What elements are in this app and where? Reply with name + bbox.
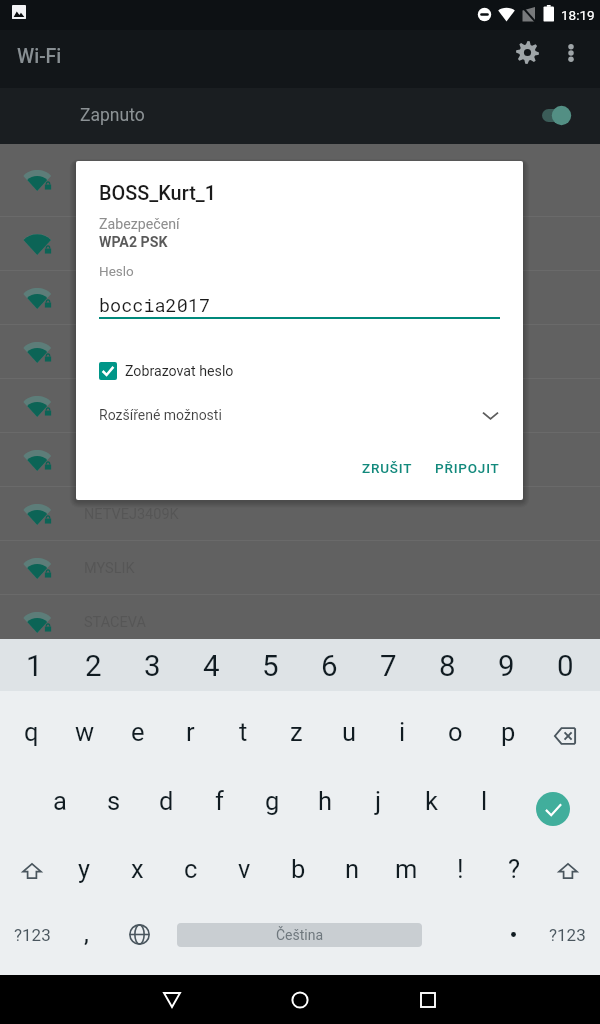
button[interactable]: Shift [5, 833, 58, 904]
staticText: ?123 [549, 925, 586, 945]
button[interactable]: p [482, 691, 535, 762]
button[interactable]: Zobrazovat heslo [99, 358, 234, 384]
button[interactable]: y [58, 833, 111, 904]
button[interactable]: Backspace [535, 691, 595, 762]
button[interactable]: Recents [404, 976, 452, 1024]
button[interactable]: Back [148, 976, 196, 1024]
button[interactable]: ?123 [540, 904, 595, 975]
button[interactable]: h [299, 762, 352, 833]
button[interactable]: 6 [300, 639, 359, 691]
button[interactable]: 8 [418, 639, 477, 691]
staticText: Zapnuto [80, 105, 145, 126]
button[interactable]: 0 [536, 639, 595, 691]
staticText: ZRUŠIT [362, 460, 413, 476]
button[interactable]: ?123 [5, 904, 60, 975]
button[interactable]: 4 [182, 639, 241, 691]
button[interactable]: BOSS_Kurt_1 [0, 217, 600, 271]
button[interactable]: o [429, 691, 482, 762]
button[interactable]: z [270, 691, 323, 762]
button[interactable]: j [352, 762, 405, 833]
button[interactable]: a [33, 762, 87, 833]
staticText: 18:19 [561, 7, 595, 23]
button[interactable]: 9 [477, 639, 536, 691]
button[interactable]: O2-Internet-44 [0, 433, 600, 487]
staticText: i [399, 717, 406, 747]
button[interactable]: 2 [64, 639, 123, 691]
button[interactable]: Done [511, 762, 595, 833]
button[interactable]: Vodafone-AE12 [0, 271, 600, 325]
staticText: 8 [439, 649, 456, 684]
button[interactable]: ZRUŠIT [351, 452, 424, 484]
button[interactable]: ! [433, 833, 487, 904]
button[interactable]: , [60, 904, 113, 975]
button[interactable]: d [140, 762, 193, 833]
button[interactable]: More options [549, 30, 594, 75]
button[interactable]: 7 [359, 639, 418, 691]
button[interactable]: NETVEJ3409K [0, 487, 600, 541]
staticText: w [75, 717, 95, 747]
button[interactable]: i [376, 691, 429, 762]
button[interactable]: 5 [241, 639, 300, 691]
staticText: ASUS_X00TD [84, 172, 171, 189]
button[interactable]: c [164, 833, 217, 904]
button[interactable]: UPC7741290 [0, 325, 600, 379]
staticText: Heslo [99, 263, 134, 279]
staticText: d [159, 786, 174, 816]
button[interactable]: Change language [113, 904, 166, 975]
button[interactable]: MYSLIK [0, 541, 600, 595]
button[interactable]: m [379, 833, 433, 904]
button[interactable]: f [193, 762, 246, 833]
staticText: BOSS_Kurt_1 [99, 182, 217, 205]
button[interactable]: q [5, 691, 58, 762]
button[interactable]: TP-LINK_24G [0, 379, 600, 433]
button[interactable]: Shift [541, 833, 595, 904]
button[interactable]: g [246, 762, 299, 833]
staticText: boccia2017 [99, 293, 211, 317]
staticText: Zabezpečení [99, 216, 180, 233]
button[interactable]: t [217, 691, 270, 762]
staticText: z [290, 717, 303, 747]
button[interactable]: k [405, 762, 458, 833]
staticText: Rozšířené možnosti [99, 407, 222, 423]
staticText: e [131, 717, 145, 747]
staticText: STACEVA [84, 614, 146, 631]
button[interactable]: Rozšířené možnosti [99, 402, 500, 428]
staticText: WPA2 PSK [99, 234, 168, 251]
button[interactable]: n [325, 833, 379, 904]
button[interactable]: Home [276, 976, 324, 1024]
button[interactable]: r [164, 691, 217, 762]
button[interactable]: ASUS_X00TD [0, 144, 600, 217]
button[interactable]: l [458, 762, 511, 833]
button[interactable]: w [58, 691, 111, 762]
staticText: x [131, 854, 144, 884]
button[interactable]: x [111, 833, 164, 904]
button[interactable]: STACEVA [0, 595, 600, 649]
button[interactable]: 3 [123, 639, 182, 691]
staticText: 3 [144, 649, 161, 684]
button[interactable]: ? [487, 833, 541, 904]
staticText: 2 [85, 649, 102, 684]
button[interactable]: PŘIPOJIT [424, 452, 511, 484]
button[interactable]: Čeština [166, 904, 486, 975]
button[interactable]: Wi-Fi toggle [534, 101, 580, 131]
staticText: Wi-Fi [17, 45, 62, 68]
staticText: 6 [321, 649, 338, 684]
button[interactable] [486, 904, 540, 975]
button[interactable]: s [87, 762, 140, 833]
button[interactable]: b [271, 833, 325, 904]
staticText: ! [457, 854, 464, 884]
staticText: Zobrazovat heslo [125, 363, 234, 380]
button[interactable]: e [111, 691, 164, 762]
button[interactable]: ZyXEL_A1 [0, 649, 600, 703]
button[interactable]: 1 [5, 639, 64, 691]
staticText: 0 [557, 649, 574, 684]
staticText: g [265, 786, 280, 816]
button[interactable]: v [217, 833, 271, 904]
staticText: n [345, 854, 360, 884]
staticText: m [395, 854, 418, 884]
staticText: PŘIPOJIT [435, 460, 500, 476]
button[interactable]: u [323, 691, 376, 762]
button[interactable]: Settings [505, 30, 550, 75]
staticText: s [107, 786, 121, 816]
